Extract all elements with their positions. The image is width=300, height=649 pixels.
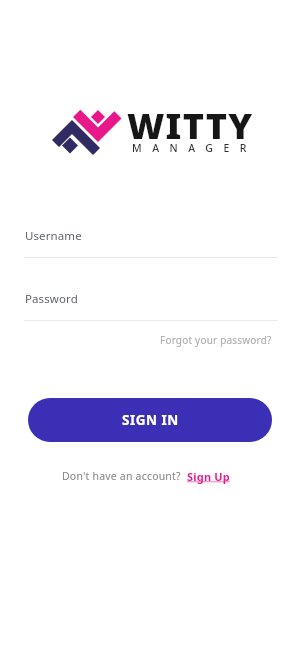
staticText: Password [25,291,78,307]
button[interactable]: SIGN IN [28,398,272,442]
button[interactable]: Password [24,289,277,319]
staticText: Username [25,228,82,244]
staticText: Forgot your password? [160,333,272,347]
staticText: MANAGER [132,141,257,155]
staticText: SIGN IN [122,411,179,429]
staticText: WITTY [127,101,254,150]
staticText: Don't have an account? [62,469,181,483]
button[interactable]: Sign Up [186,466,236,486]
staticText: Sign Up [187,469,230,484]
button[interactable]: Username [24,226,277,256]
button[interactable]: Forgot your password? [157,331,272,349]
